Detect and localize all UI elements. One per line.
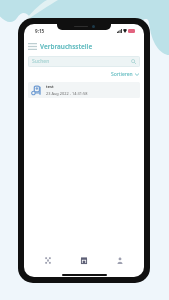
button[interactable]: Dashboard bbox=[36, 252, 60, 268]
button[interactable]: test bbox=[28, 82, 140, 98]
button[interactable]: Sortieren bbox=[111, 71, 139, 77]
button[interactable]: Profile bbox=[108, 252, 132, 268]
staticText: Sortieren bbox=[111, 71, 133, 77]
staticText: Verbrauchsstelle bbox=[40, 42, 93, 51]
staticText: Suchen bbox=[32, 58, 50, 65]
button[interactable]: Suchen bbox=[28, 56, 140, 67]
staticText: 23 Aug 2022 - 14:31:58 bbox=[46, 91, 88, 96]
button[interactable]: Sites bbox=[72, 252, 96, 268]
other: Menu bbox=[28, 43, 37, 50]
button[interactable]: Menu bbox=[24, 39, 144, 53]
staticText: test bbox=[46, 84, 54, 89]
staticText: 9:15 bbox=[35, 28, 45, 34]
